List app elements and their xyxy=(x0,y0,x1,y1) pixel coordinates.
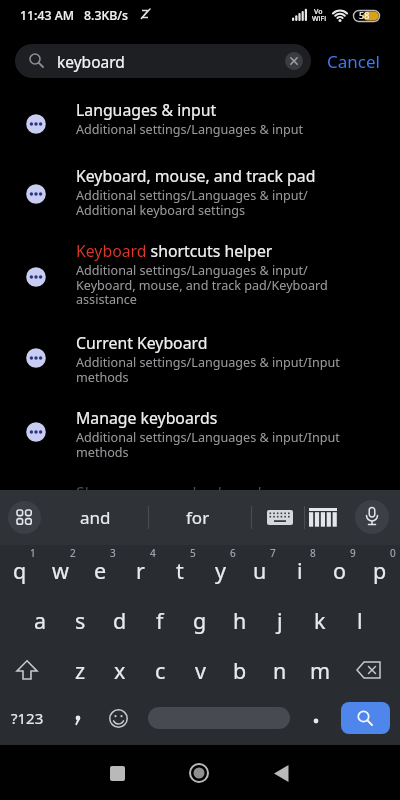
staticText: 2 xyxy=(70,546,76,560)
button[interactable]: r xyxy=(120,545,160,595)
staticText: 9 xyxy=(350,546,356,560)
button[interactable]: ?123 xyxy=(0,696,57,740)
staticText: Manage keyboards xyxy=(76,407,218,429)
staticText: Additional settings/Languages & input/In… xyxy=(76,429,340,446)
button[interactable]: i xyxy=(280,545,320,595)
button[interactable]: l xyxy=(340,595,380,645)
button[interactable]: u xyxy=(240,545,280,595)
staticText: g xyxy=(193,606,207,635)
staticText: h xyxy=(233,606,247,635)
staticText: 0 xyxy=(390,546,396,560)
staticText: y xyxy=(215,556,226,585)
staticText: methods xyxy=(76,369,129,386)
staticText: 8.3KB/s xyxy=(84,7,128,24)
button[interactable] xyxy=(0,326,400,386)
button[interactable] xyxy=(0,93,400,138)
staticText: and xyxy=(80,506,111,529)
staticText: p xyxy=(373,556,387,585)
staticText: 11:43 AM xyxy=(20,7,75,24)
button[interactable]: p xyxy=(360,545,400,595)
button[interactable]: and xyxy=(65,495,125,539)
staticText: n xyxy=(273,656,287,685)
button[interactable]: a xyxy=(20,595,60,645)
staticText: Additional keyboard settings xyxy=(76,202,246,219)
button[interactable] xyxy=(0,234,400,309)
button[interactable]: k xyxy=(300,595,340,645)
staticText: e xyxy=(94,556,107,585)
staticText: 58 xyxy=(359,9,370,21)
staticText: 5 xyxy=(190,546,196,560)
staticText: m xyxy=(310,656,331,685)
staticText: 6 xyxy=(230,546,236,560)
button[interactable] xyxy=(355,500,389,534)
staticText: z xyxy=(75,656,86,685)
staticText: v xyxy=(195,656,206,685)
button[interactable]: v xyxy=(180,645,220,695)
button[interactable] xyxy=(97,753,137,793)
button[interactable]: n xyxy=(260,645,300,695)
staticText: Keyboard shortcuts helper xyxy=(76,240,273,262)
staticText: 7 xyxy=(270,546,276,560)
staticText: for xyxy=(186,506,210,529)
staticText: 8 xyxy=(310,546,316,560)
button[interactable] xyxy=(267,510,293,525)
button[interactable]: z xyxy=(60,645,100,695)
staticText: ?123 xyxy=(11,708,44,728)
staticText: a xyxy=(34,606,47,635)
button[interactable] xyxy=(8,501,41,534)
staticText: Additional settings/Languages & input xyxy=(76,121,304,138)
staticText: l xyxy=(357,606,363,635)
button[interactable] xyxy=(0,401,400,461)
staticText: assistance xyxy=(76,291,137,308)
button[interactable]: e xyxy=(80,545,120,595)
staticText: i xyxy=(297,556,303,585)
button[interactable]: x xyxy=(100,645,140,695)
button[interactable]: g xyxy=(180,595,220,645)
button[interactable]: j xyxy=(260,595,300,645)
button[interactable] xyxy=(349,650,389,690)
staticText: f xyxy=(156,606,164,635)
button[interactable]: keyboard xyxy=(15,44,311,78)
staticText: Vo xyxy=(314,7,323,17)
button[interactable]: d xyxy=(100,595,140,645)
staticText: q xyxy=(13,556,27,585)
button[interactable]: m xyxy=(300,645,340,695)
staticText: Current Keyboard xyxy=(76,332,208,354)
button[interactable] xyxy=(285,52,303,70)
button[interactable]: s xyxy=(60,595,100,645)
button[interactable]: t xyxy=(160,545,200,595)
button[interactable]: for xyxy=(168,495,228,539)
staticText: d xyxy=(113,606,127,635)
staticText: k xyxy=(314,606,326,635)
button[interactable] xyxy=(296,698,336,738)
button[interactable]: Cancel xyxy=(320,48,386,74)
button[interactable] xyxy=(309,508,337,527)
button[interactable]: c xyxy=(140,645,180,695)
staticText: Show onscreen keyboard w xyxy=(76,482,279,504)
staticText: Additional settings/Languages & input/In… xyxy=(76,354,340,371)
staticText: 4 xyxy=(150,546,156,560)
button[interactable] xyxy=(7,650,47,690)
staticText: Languages & input xyxy=(76,99,217,121)
button[interactable]: w xyxy=(40,545,80,595)
button[interactable]: f xyxy=(140,595,180,645)
button[interactable] xyxy=(341,702,390,734)
button[interactable]: b xyxy=(220,645,260,695)
button[interactable] xyxy=(0,159,400,219)
button[interactable]: h xyxy=(220,595,260,645)
button[interactable] xyxy=(148,707,290,729)
staticText: t xyxy=(176,556,184,585)
button[interactable]: y xyxy=(200,545,240,595)
button[interactable] xyxy=(261,753,301,793)
button[interactable] xyxy=(58,698,98,738)
staticText: j xyxy=(277,606,283,635)
staticText: Cancel xyxy=(327,50,380,73)
staticText: o xyxy=(333,556,347,585)
button[interactable] xyxy=(179,753,219,793)
button[interactable] xyxy=(98,698,138,738)
button[interactable]: o xyxy=(320,545,360,595)
button[interactable]: q xyxy=(0,545,40,595)
staticText: Keyboard, mouse, and track pad/Keyboard xyxy=(76,277,328,294)
staticText: keyboard xyxy=(57,51,125,72)
staticText: s xyxy=(75,606,86,635)
